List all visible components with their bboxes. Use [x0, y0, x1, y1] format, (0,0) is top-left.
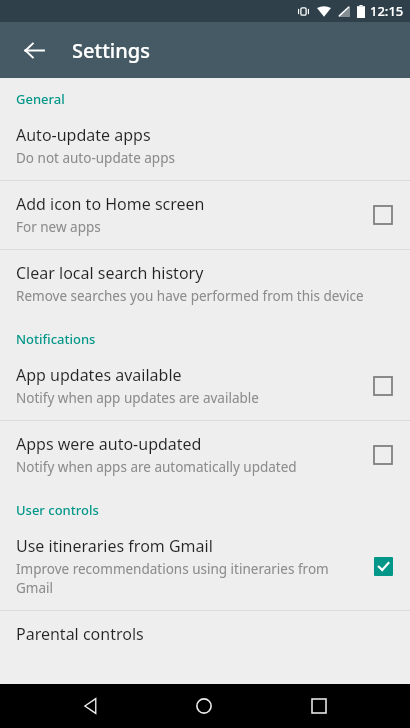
staticText: Apps were auto-updated	[16, 433, 202, 455]
staticText: Gmail	[16, 579, 53, 597]
staticText: Parental controls	[16, 623, 144, 645]
button[interactable]: Unchecked	[372, 444, 394, 466]
button[interactable]: Unchecked	[372, 375, 394, 397]
staticText: Improve recommendations using itinerarie…	[16, 560, 329, 578]
staticText: Notifications	[16, 330, 96, 348]
staticText: Notify when apps are automatically updat…	[16, 458, 297, 476]
button[interactable]: Back	[66, 684, 114, 728]
button[interactable]: Parental controls	[0, 611, 410, 658]
button[interactable]: Apps were auto-updated	[0, 421, 410, 489]
staticText: Clear local search history	[16, 262, 204, 284]
staticText: Auto-update apps	[16, 124, 151, 146]
button[interactable]: Use itineraries from Gmail	[0, 523, 410, 610]
staticText: Add icon to Home screen	[16, 193, 205, 215]
staticText: 12:15	[370, 2, 404, 20]
staticText: For new apps	[16, 218, 101, 236]
staticText: User controls	[16, 501, 99, 519]
staticText: Remove searches you have performed from …	[16, 287, 364, 305]
staticText: Use itineraries from Gmail	[16, 535, 213, 557]
button[interactable]: Auto-update apps	[0, 112, 410, 180]
button[interactable]: Home	[180, 684, 228, 728]
button[interactable]: Back	[14, 30, 54, 70]
button[interactable]: App updates available	[0, 352, 410, 420]
button[interactable]: Checked	[372, 555, 394, 577]
staticText: Do not auto-update apps	[16, 149, 175, 167]
button[interactable]: Add icon to Home screen	[0, 181, 410, 249]
button[interactable]: Recent apps	[295, 684, 343, 728]
staticText: Settings	[72, 37, 150, 64]
staticText: App updates available	[16, 364, 182, 386]
staticText: General	[16, 90, 65, 108]
button[interactable]: Clear local search history	[0, 250, 410, 318]
staticText: Notify when app updates are available	[16, 389, 259, 407]
button[interactable]: Unchecked	[372, 204, 394, 226]
